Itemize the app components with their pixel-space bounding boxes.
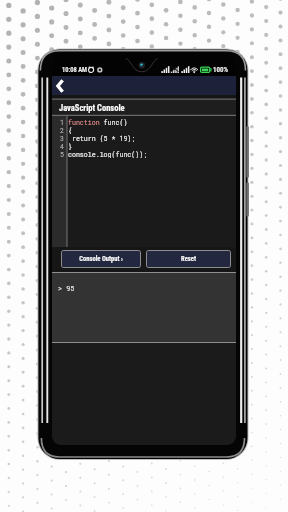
button[interactable]: Back: [56, 78, 67, 94]
staticText: 100%: [213, 66, 228, 74]
staticText: 1: [60, 118, 64, 126]
staticText: > 95: [58, 284, 75, 293]
staticText: 10:08 AM: [62, 66, 87, 74]
staticText: function func(): [68, 118, 128, 126]
staticText: {: [68, 126, 72, 134]
staticText: 5: [60, 150, 64, 158]
staticText: Reset: [181, 255, 196, 263]
staticText: return (5 * 19);: [68, 134, 136, 142]
staticText: 2: [60, 126, 64, 134]
button[interactable]: Reset: [146, 250, 231, 268]
staticText: Console Output ›: [79, 255, 123, 263]
staticText: }: [68, 142, 72, 150]
button[interactable]: Console Output ›: [61, 250, 141, 268]
staticText: 4: [60, 142, 64, 150]
staticText: console.log(func());: [68, 150, 148, 158]
staticText: JavaScript Console: [59, 103, 125, 113]
staticText: 3: [60, 134, 64, 142]
